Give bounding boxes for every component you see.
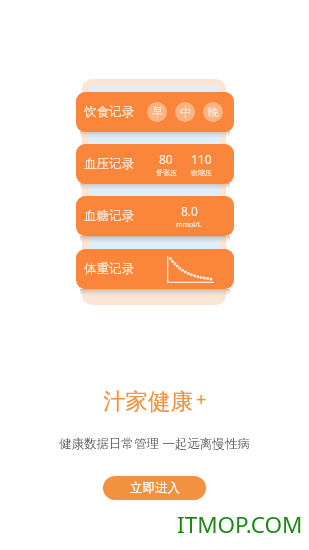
staticText: 舒张压 bbox=[156, 168, 177, 177]
staticText: 晚 bbox=[208, 105, 219, 119]
staticText: 收缩压 bbox=[191, 168, 212, 177]
button[interactable]: 晚 bbox=[203, 102, 223, 122]
staticText: 8.0 bbox=[181, 203, 198, 219]
staticText: mmol/L bbox=[176, 220, 202, 230]
button[interactable]: 中 bbox=[175, 102, 195, 122]
staticText: 110 bbox=[191, 151, 212, 167]
staticText: ITMOP.COM bbox=[177, 509, 303, 540]
staticText: + bbox=[196, 387, 207, 412]
staticText: 健康数据日常管理 一起远离慢性病 bbox=[59, 435, 250, 452]
staticText: 饮食记录 bbox=[84, 104, 134, 120]
button[interactable]: 早 bbox=[147, 102, 167, 122]
button[interactable]: 立即进入 bbox=[103, 476, 206, 500]
staticText: 血压记录 bbox=[84, 156, 134, 172]
staticText: 立即进入 bbox=[130, 480, 180, 496]
button[interactable]: 饮食记录 bbox=[76, 92, 234, 132]
staticText: 体重记录 bbox=[84, 261, 134, 277]
staticText: 早 bbox=[152, 105, 163, 119]
button[interactable]: 体重记录 bbox=[76, 249, 234, 289]
button[interactable]: 血糖记录 bbox=[76, 196, 234, 236]
button[interactable]: 血压记录 bbox=[76, 144, 234, 184]
staticText: 汁家健康 bbox=[103, 387, 193, 415]
staticText: 血糖记录 bbox=[84, 208, 134, 224]
staticText: 80 bbox=[159, 151, 173, 167]
staticText: 中 bbox=[180, 105, 191, 119]
